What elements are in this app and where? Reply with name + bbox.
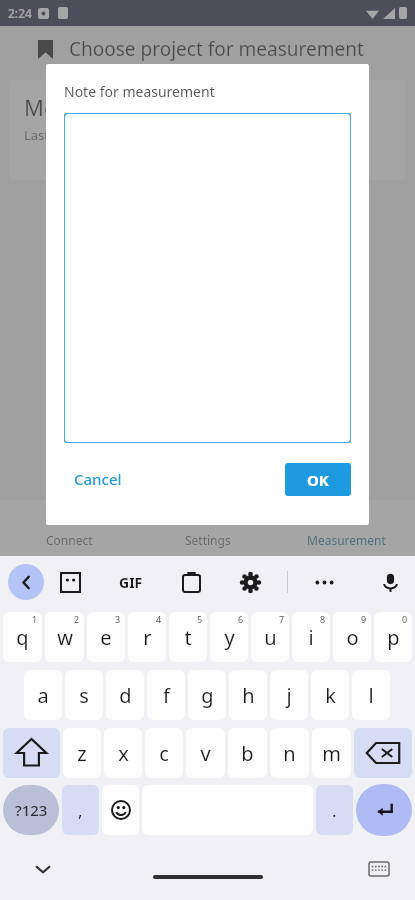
staticText: j xyxy=(286,682,292,709)
button[interactable]: g xyxy=(188,670,226,720)
button[interactable]: Switch keyboard xyxy=(369,862,389,876)
staticText: w xyxy=(57,624,73,651)
staticText: t xyxy=(184,624,192,651)
staticText: Connect xyxy=(46,532,93,548)
button[interactable]: GIF xyxy=(119,573,143,592)
staticText: d xyxy=(119,682,132,709)
staticText: Settings xyxy=(185,532,231,548)
staticText: c xyxy=(159,740,169,767)
button[interactable]: u xyxy=(251,612,289,662)
button[interactable]: s xyxy=(65,670,103,720)
staticText: h xyxy=(242,682,255,709)
button[interactable]: Cancel xyxy=(64,461,132,497)
staticText: z xyxy=(77,740,87,767)
staticText: q xyxy=(16,624,29,651)
button[interactable]: l xyxy=(352,670,390,720)
staticText: 3 xyxy=(115,613,121,625)
staticText: Cancel xyxy=(74,469,122,489)
button[interactable]: a xyxy=(24,670,62,720)
button[interactable]: p xyxy=(374,612,412,662)
button[interactable]: Hide keyboard xyxy=(34,860,52,878)
staticText: Note for measurement xyxy=(64,82,215,101)
button[interactable]: j xyxy=(270,670,308,720)
staticText: 0 xyxy=(402,613,408,625)
button[interactable]: OK xyxy=(285,463,351,496)
staticText: 2:24 xyxy=(8,5,32,21)
button[interactable]: o xyxy=(333,612,371,662)
staticText: 8 xyxy=(320,613,326,625)
button[interactable]: x xyxy=(104,728,142,778)
button[interactable]: Sticker xyxy=(60,572,81,593)
button[interactable]: n xyxy=(270,728,309,778)
staticText: 9 xyxy=(361,613,367,625)
button[interactable]: Measurement xyxy=(277,500,415,556)
button[interactable] xyxy=(64,113,351,443)
button[interactable]: h xyxy=(229,670,267,720)
staticText: e xyxy=(100,624,112,651)
button[interactable]: Back xyxy=(8,564,44,600)
staticText: r xyxy=(143,624,152,651)
staticText: l xyxy=(368,682,374,709)
staticText: n xyxy=(283,740,296,767)
button[interactable]: q xyxy=(3,612,42,662)
button[interactable]: . xyxy=(316,785,353,835)
staticText: k xyxy=(325,682,336,709)
button[interactable]: Settings xyxy=(139,500,277,556)
button[interactable]: f xyxy=(147,670,185,720)
button[interactable]: i xyxy=(292,612,330,662)
button[interactable]: ?123 xyxy=(3,785,59,835)
staticText: 5 xyxy=(197,613,203,625)
staticText: o xyxy=(346,624,359,651)
staticText: m xyxy=(322,740,341,767)
staticText: i xyxy=(308,624,314,651)
button[interactable]: c xyxy=(145,728,183,778)
staticText: Choose project for measurement xyxy=(69,36,364,62)
button[interactable]: Shift xyxy=(3,728,60,778)
button[interactable]: b xyxy=(228,728,267,778)
staticText: 1 xyxy=(32,613,38,625)
button[interactable]: t xyxy=(169,612,207,662)
staticText: y xyxy=(224,624,235,651)
button[interactable]: e xyxy=(87,612,125,662)
staticText: u xyxy=(264,624,277,651)
button[interactable]: Enter xyxy=(356,784,412,836)
button[interactable]: Settings xyxy=(240,572,261,593)
staticText: Measurement xyxy=(307,532,386,548)
staticText: Measurement xyxy=(24,92,169,122)
button[interactable]: z xyxy=(63,728,101,778)
staticText: ?123 xyxy=(15,800,48,820)
staticText: 2 xyxy=(74,613,80,625)
staticText: 4 xyxy=(156,613,162,625)
staticText: OK xyxy=(307,470,329,490)
button[interactable]: Backspace xyxy=(354,728,412,778)
staticText: b xyxy=(241,740,254,767)
button[interactable]: , xyxy=(62,785,99,835)
button[interactable]: d xyxy=(106,670,144,720)
button[interactable]: r xyxy=(128,612,166,662)
button[interactable]: Emoji xyxy=(102,785,139,835)
button[interactable]: m xyxy=(312,728,351,778)
button[interactable]: Connect xyxy=(0,500,139,556)
button[interactable]: y xyxy=(210,612,248,662)
button[interactable]: Voice input xyxy=(380,572,401,593)
staticText: 7 xyxy=(279,613,285,625)
button[interactable]: w xyxy=(45,612,84,662)
staticText: x xyxy=(118,740,129,767)
staticText: g xyxy=(201,682,214,709)
staticText: v xyxy=(200,740,211,767)
staticText: f xyxy=(163,682,170,709)
staticText: s xyxy=(79,682,89,709)
staticText: p xyxy=(387,624,400,651)
staticText: Last sync xyxy=(24,126,80,144)
button[interactable]: Clipboard xyxy=(181,572,202,593)
button[interactable]: v xyxy=(186,728,225,778)
staticText: , xyxy=(78,799,83,822)
button[interactable]: k xyxy=(311,670,349,720)
staticText: . xyxy=(332,799,337,822)
staticText: 6 xyxy=(238,613,244,625)
staticText: a xyxy=(37,682,49,709)
button[interactable]: More options xyxy=(314,572,335,593)
